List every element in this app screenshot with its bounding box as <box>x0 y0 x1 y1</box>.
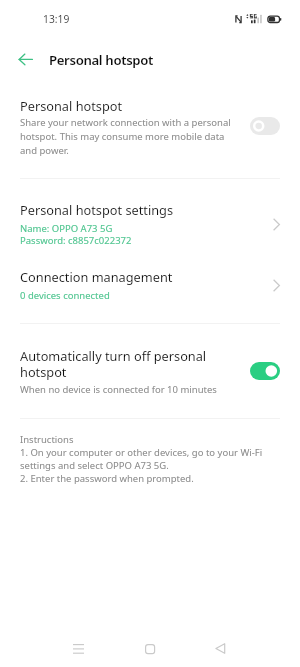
staticText: Personal hotspot settings <box>20 201 174 218</box>
staticText: 0 devices connected <box>20 289 110 302</box>
staticText: When no device is connected for 10 minut… <box>20 383 217 396</box>
button[interactable]: Home <box>125 624 175 666</box>
button[interactable]: Recent apps <box>54 624 104 666</box>
staticText: 1. On your computer or other devices, go… <box>20 446 263 485</box>
staticText: 13:19 <box>43 12 70 26</box>
staticText: Share your network connection with a per… <box>20 116 231 157</box>
button[interactable]: Back <box>8 42 42 76</box>
staticText: Connection management <box>20 268 173 285</box>
staticText: Automatically turn off personal hotspot <box>20 347 207 380</box>
button[interactable]: Turn off <box>250 362 280 380</box>
staticText: Name: OPPO A73 5G Password: c8857c022372 <box>20 222 132 247</box>
button[interactable]: Connection management <box>0 260 300 310</box>
button[interactable]: Back <box>196 624 246 666</box>
button[interactable]: Personal hotspot settings <box>0 192 300 252</box>
staticText: Personal hotspot <box>20 97 123 114</box>
button[interactable]: Personal hotspot <box>0 88 300 176</box>
staticText: Personal hotspot <box>49 51 154 69</box>
staticText: Instructions <box>20 433 74 446</box>
button[interactable]: Turn on <box>250 117 280 135</box>
button[interactable]: Automatically turn off personal hotspot <box>0 336 300 404</box>
